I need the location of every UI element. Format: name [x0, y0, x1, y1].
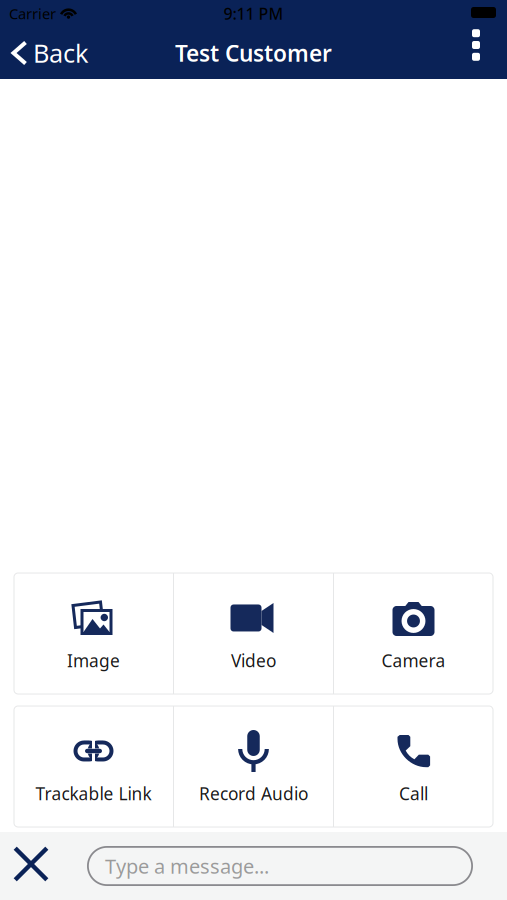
button[interactable]: Camera [334, 573, 493, 694]
staticText: Record Audio [199, 782, 308, 805]
staticText: Type a message... [105, 853, 269, 879]
button[interactable]: Image [14, 573, 173, 694]
button[interactable]: Type a message... [87, 846, 473, 886]
staticText: Trackable Link [35, 782, 151, 805]
button[interactable]: Call [334, 706, 493, 827]
button[interactable]: Back [0, 27, 99, 79]
button[interactable]: Record Audio [174, 706, 333, 827]
staticText: Back [33, 36, 89, 70]
staticText: Camera [381, 649, 445, 672]
button[interactable]: Video [174, 573, 333, 694]
staticText: Video [231, 649, 276, 672]
staticText: Call [399, 782, 428, 805]
button[interactable]: Close [0, 832, 87, 900]
button[interactable]: Trackable Link [14, 706, 173, 827]
staticText: Test Customer [175, 38, 332, 68]
staticText: Image [67, 649, 120, 672]
staticText: 9:11 PM [223, 3, 283, 24]
button[interactable]: More options [457, 27, 507, 79]
staticText: Carrier [9, 4, 56, 23]
